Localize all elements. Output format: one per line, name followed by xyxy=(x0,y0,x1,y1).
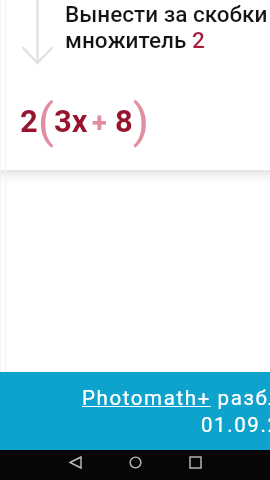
staticText: 3x xyxy=(54,103,88,139)
staticText: Photomath+ разблокирован до xyxy=(82,386,270,410)
button[interactable]: Photomath+ разблокирован до xyxy=(0,372,270,450)
button[interactable]: Home xyxy=(113,450,157,480)
staticText: + xyxy=(92,107,107,139)
staticText: 2 xyxy=(20,103,38,139)
staticText: 8 xyxy=(115,103,133,139)
staticText: ( xyxy=(38,94,54,148)
staticText: Вынести за скобки множитель 2 xyxy=(65,1,270,53)
button[interactable]: Back xyxy=(53,450,97,480)
staticText: 01.09.2020 xyxy=(201,413,270,437)
button[interactable]: Recent apps xyxy=(173,450,217,480)
staticText: ) xyxy=(133,94,150,148)
